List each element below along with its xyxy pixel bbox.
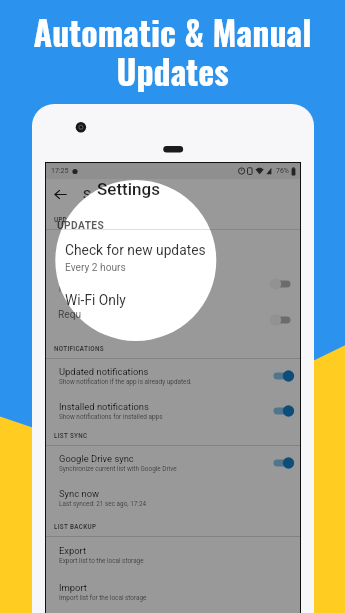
button[interactable]: Updated notifications [46,358,300,393]
staticText: Check for new updates [65,242,206,258]
staticText: Show notifications for installed apps [59,413,163,421]
staticText: 76% [276,167,289,175]
staticText: 17:25 [51,167,69,175]
staticText: Synchronize current list with Google Dri… [59,465,177,473]
button[interactable]: Check for new updates [46,229,300,266]
staticText: UPDATES [57,220,105,232]
staticText: Import [59,582,87,593]
staticText: UPDATES [54,216,84,223]
staticText: Automatic & Manual Updates [33,6,312,96]
staticText: Show notification if the app is already … [59,378,192,386]
button[interactable]: Sync now [46,480,300,515]
button[interactable]: Wi-Fi Only [46,266,300,302]
staticText: Settings [83,187,132,202]
staticText: Google Drive sync [59,453,134,464]
staticText: Installed notifications [59,401,149,412]
button[interactable] [46,302,300,338]
staticText: Export [59,545,87,556]
staticText: Export list to the local storage [59,557,144,565]
button[interactable]: Back [46,179,75,210]
staticText: Every 2 hours [59,250,98,258]
staticText: Last synced: 21 sec ago, 17:24 [59,500,147,508]
staticText: Requ [58,309,82,321]
button[interactable]: Google Drive sync [46,445,300,480]
staticText: LIST SYNC [54,432,88,439]
staticText: Updated notifications [59,366,149,377]
staticText: NOTIFICATIONS [54,345,104,352]
staticText: Every 2 hours [65,262,126,274]
staticText: Wi-Fi Only [65,292,126,308]
staticText: Check for new updates [59,238,155,249]
button[interactable]: Export [46,536,300,573]
staticText: Requires Wi-Fi connection [59,286,133,294]
button[interactable]: Installed notifications [46,393,300,428]
staticText: Import list for the local storage [59,594,147,602]
staticText: Sync now [59,488,100,499]
button[interactable]: Import [46,573,300,610]
staticText: Settings [97,179,160,199]
staticText: LIST BACKUP [54,523,97,530]
